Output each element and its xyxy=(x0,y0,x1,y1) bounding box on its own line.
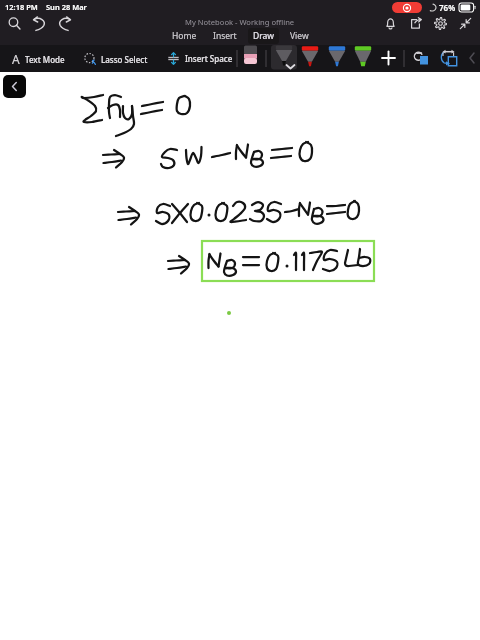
button[interactable]: Insert Space xyxy=(163,52,237,65)
button[interactable]: Green highlighter xyxy=(348,45,374,72)
button[interactable]: Red pen xyxy=(296,45,322,72)
button[interactable]: Undo xyxy=(27,14,52,32)
staticText: View xyxy=(290,30,309,42)
staticText: Insert xyxy=(213,30,237,42)
button[interactable]: Home xyxy=(167,28,202,44)
staticText: Text Mode xyxy=(25,54,65,65)
button[interactable]: Back xyxy=(3,75,26,98)
button[interactable]: Blue pen xyxy=(322,45,348,72)
staticText: Lasso Select xyxy=(101,54,148,65)
button[interactable]: Notifications xyxy=(378,14,403,32)
button[interactable]: A xyxy=(8,51,69,67)
button[interactable]: Ink to shape xyxy=(410,45,436,72)
button[interactable]: Recording xyxy=(392,2,422,13)
button[interactable]: Lasso Select xyxy=(80,53,152,65)
button[interactable]: Black pen xyxy=(269,45,296,72)
staticText: 76% xyxy=(439,2,456,13)
staticText: My Notebook - Working offline xyxy=(185,17,295,27)
button[interactable]: Search xyxy=(2,14,27,32)
staticText: Home xyxy=(172,30,197,42)
button[interactable]: Draw xyxy=(248,28,279,44)
button[interactable]: Highlighter xyxy=(241,45,265,72)
staticText: Insert Space xyxy=(185,53,233,64)
staticText: 12:18 PM xyxy=(5,2,38,12)
button[interactable]: Ink to math xyxy=(436,45,462,72)
button[interactable]: Add pen xyxy=(374,45,398,72)
button[interactable]: View xyxy=(285,28,314,44)
staticText: Sun 28 Mar xyxy=(46,2,87,12)
button[interactable]: Settings xyxy=(428,14,453,32)
button[interactable]: Insert xyxy=(208,28,242,44)
button[interactable]: Collapse xyxy=(453,14,478,32)
staticText: A xyxy=(12,51,20,67)
button[interactable]: Share xyxy=(403,14,428,32)
button[interactable]: Redo xyxy=(52,14,77,32)
staticText: Draw xyxy=(253,30,274,42)
